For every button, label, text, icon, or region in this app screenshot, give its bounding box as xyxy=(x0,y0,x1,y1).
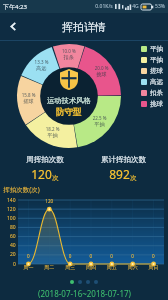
staticText: 周挥拍次数 xyxy=(26,155,64,164)
button[interactable]: 累计挥拍次数 xyxy=(84,151,162,185)
button[interactable] xyxy=(78,280,82,284)
button[interactable] xyxy=(94,280,98,284)
staticText: 挑球 xyxy=(150,100,163,108)
button[interactable] xyxy=(70,280,74,284)
staticText: 高远 xyxy=(150,78,163,86)
button[interactable]: 周挥拍次数 xyxy=(6,151,84,185)
button[interactable]: 返回 xyxy=(0,13,27,40)
staticText: 搓球 xyxy=(150,67,163,75)
staticText: 扣杀 xyxy=(150,89,163,97)
staticText: 4G xyxy=(132,3,139,10)
staticText: 次 xyxy=(52,174,59,182)
staticText: 挥拍次数(次) xyxy=(3,185,40,194)
staticText: (2018-07-16~2018-07-17) xyxy=(38,288,131,299)
staticText: 平抽 xyxy=(150,56,163,64)
button[interactable]: 平抽 xyxy=(141,54,163,65)
staticText: 下午4:23 xyxy=(3,3,27,11)
staticText: 挥拍详情 xyxy=(62,20,106,34)
button[interactable]: 搓球 xyxy=(141,65,163,76)
button[interactable]: 平抽 xyxy=(141,43,163,54)
button[interactable] xyxy=(86,280,90,284)
staticText: 0.01K/s xyxy=(95,3,113,10)
staticText: 53% xyxy=(155,3,165,10)
button[interactable]: 挑球 xyxy=(141,98,163,109)
staticText: 次 xyxy=(130,174,137,182)
staticText: 120 xyxy=(31,166,52,182)
staticText: 892 xyxy=(109,166,130,182)
button[interactable]: 高远 xyxy=(141,76,163,87)
button[interactable]: 扣杀 xyxy=(141,87,163,98)
staticText: 累计挥拍次数 xyxy=(101,155,146,164)
staticText: 平抽 xyxy=(150,45,163,53)
